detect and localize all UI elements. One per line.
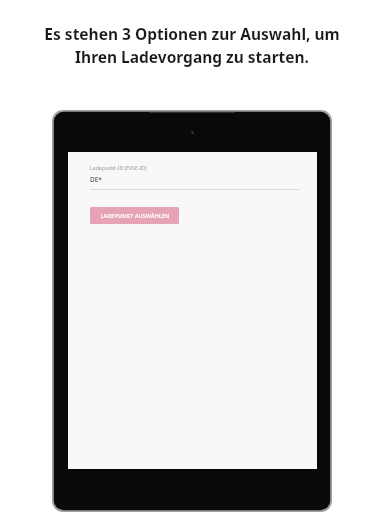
- button[interactable]: Ladepunkt auswählen: [90, 207, 179, 224]
- staticText: DE*: [90, 175, 102, 184]
- staticText: LADEPUNKT AUSWÄHLEN: [100, 212, 170, 219]
- staticText: Ladepunkt-ID (EVSE-ID): [90, 164, 147, 171]
- staticText: Es stehen 3 Optionen zur Auswahl, um Ihr…: [44, 23, 340, 68]
